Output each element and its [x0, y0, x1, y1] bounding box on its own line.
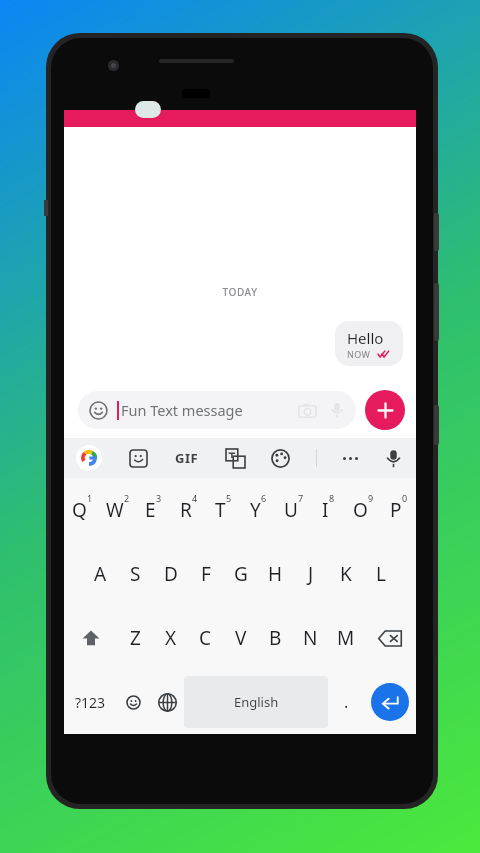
staticText: P [390, 497, 402, 523]
staticText: 4 [192, 492, 198, 504]
staticText: Q [72, 497, 87, 523]
button[interactable]: P [381, 478, 416, 542]
button[interactable]: S [118, 542, 153, 606]
staticText: J [308, 561, 314, 587]
staticText: 5 [226, 492, 232, 504]
staticText: E [145, 497, 156, 523]
staticText: M [337, 625, 355, 651]
staticText: F [201, 561, 211, 587]
button[interactable]: . [328, 670, 364, 734]
button[interactable]: Backspace [363, 606, 416, 670]
staticText: 6 [261, 492, 267, 504]
button[interactable]: Emoji [116, 670, 150, 734]
button[interactable]: L [363, 542, 398, 606]
staticText: 9 [368, 492, 374, 504]
button[interactable]: O [346, 478, 381, 542]
button[interactable]: H [258, 542, 293, 606]
button[interactable]: Z [118, 606, 153, 670]
button[interactable]: T [206, 478, 241, 542]
other: Camera [299, 402, 316, 419]
staticText: 3 [156, 492, 162, 504]
button[interactable]: K [328, 542, 363, 606]
staticText: V [235, 625, 247, 651]
staticText: . [344, 691, 349, 713]
staticText: G [234, 561, 248, 587]
button[interactable]: Language [150, 670, 184, 734]
button[interactable]: U [276, 478, 311, 542]
button[interactable]: W [100, 478, 136, 542]
staticText: S [130, 561, 141, 587]
button[interactable]: F [188, 542, 223, 606]
staticText: I [322, 497, 329, 523]
button[interactable]: I [311, 478, 346, 542]
other: Voice [329, 402, 345, 418]
button[interactable]: J [293, 542, 328, 606]
button[interactable]: Q [64, 478, 100, 542]
button[interactable]: New message [365, 390, 405, 430]
staticText: Fun Text message [121, 400, 243, 420]
button[interactable]: More [343, 457, 358, 460]
button[interactable]: C [188, 606, 223, 670]
staticText: D [164, 561, 178, 587]
staticText: Hello [347, 328, 384, 348]
staticText: 8 [329, 492, 335, 504]
button[interactable]: X [153, 606, 188, 670]
button[interactable]: E [136, 478, 171, 542]
staticText: T [215, 497, 226, 523]
staticText: O [353, 497, 368, 523]
button[interactable]: Voice input [384, 449, 403, 468]
staticText: L [376, 561, 386, 587]
staticText: W [106, 497, 124, 523]
button[interactable]: Google [76, 445, 102, 471]
staticText: Z [130, 625, 141, 651]
staticText: GIF [175, 449, 199, 467]
button[interactable]: Enter [371, 683, 409, 721]
staticText: NOW [347, 348, 371, 360]
staticText: X [165, 625, 177, 651]
staticText: 2 [124, 492, 130, 504]
button[interactable]: Translate [226, 449, 245, 468]
button[interactable]: R [171, 478, 206, 542]
staticText: H [268, 561, 283, 587]
staticText: English [234, 693, 279, 711]
staticText: A [94, 561, 107, 587]
button[interactable]: G [223, 542, 258, 606]
button[interactable]: GIF [175, 449, 199, 467]
staticText: K [340, 561, 352, 587]
button[interactable]: V [223, 606, 258, 670]
staticText: N [303, 625, 318, 651]
button[interactable]: Stickers [129, 449, 148, 468]
staticText: 1 [87, 492, 93, 504]
staticText: ?123 [75, 693, 106, 712]
button[interactable]: English [184, 676, 328, 728]
staticText: 0 [402, 492, 408, 504]
other: Emoji [89, 401, 108, 420]
button[interactable]: D [153, 542, 188, 606]
button[interactable]: B [258, 606, 293, 670]
button[interactable]: Emoji [78, 391, 356, 429]
button[interactable]: Shift [64, 606, 118, 670]
button[interactable]: Y [241, 478, 276, 542]
staticText: Y [250, 497, 261, 523]
staticText: TODAY [64, 285, 416, 299]
button[interactable]: M [328, 606, 363, 670]
staticText: B [269, 625, 282, 651]
button[interactable]: N [293, 606, 328, 670]
staticText: U [284, 497, 298, 523]
button[interactable]: Theme [271, 449, 290, 468]
button[interactable]: ?123 [64, 670, 116, 734]
staticText: R [180, 497, 192, 523]
staticText: 7 [298, 492, 304, 504]
staticText: C [199, 625, 212, 651]
button[interactable]: Hello [335, 321, 403, 366]
button[interactable]: A [83, 542, 118, 606]
